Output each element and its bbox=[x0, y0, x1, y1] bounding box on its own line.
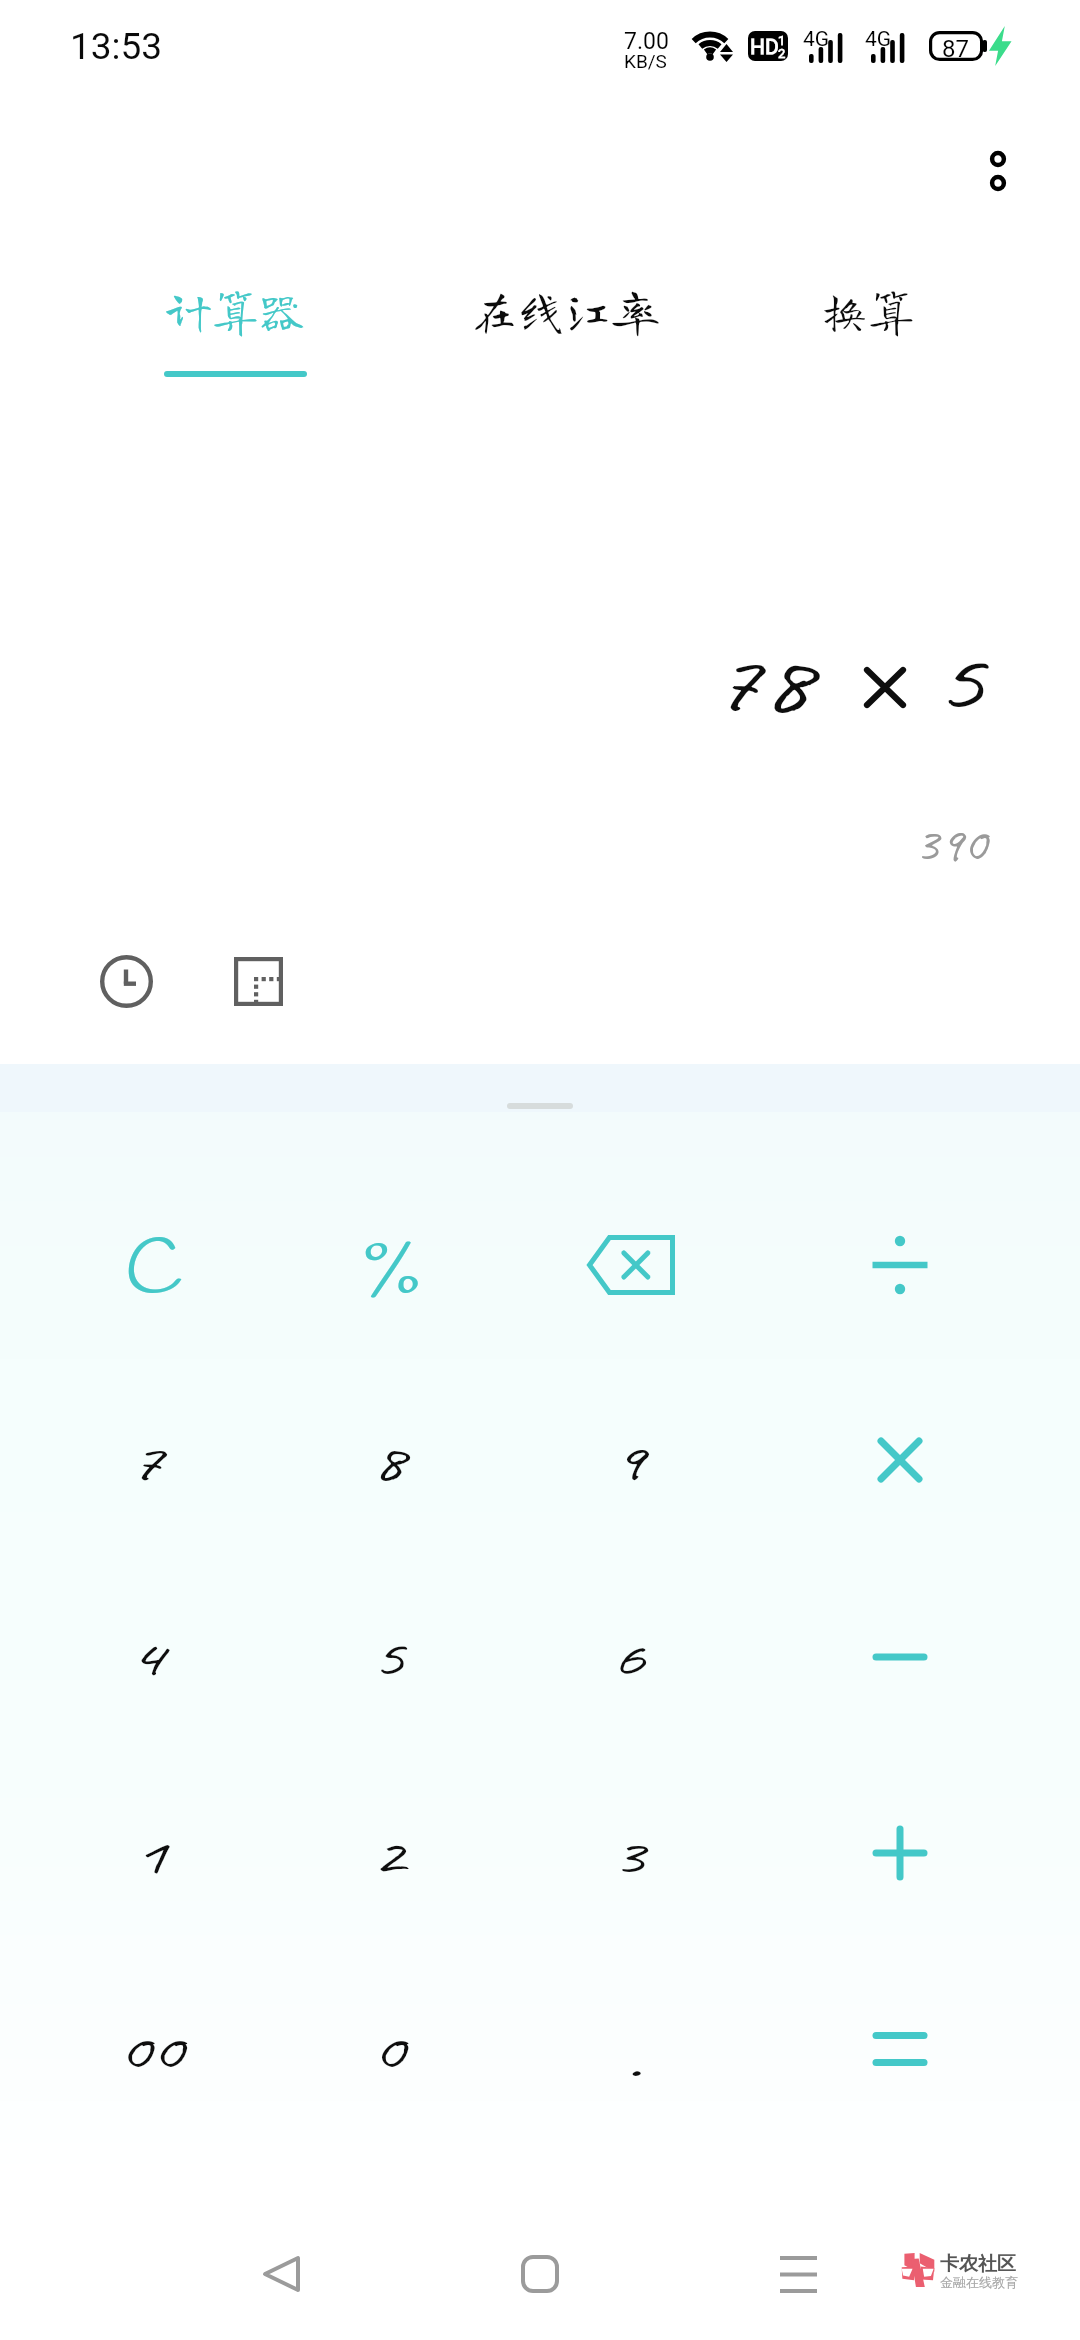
button[interactable]: 0 bbox=[270, 1953, 510, 2149]
staticText: 390 bbox=[914, 814, 987, 874]
button[interactable]: Keypad bbox=[214, 937, 302, 1025]
button[interactable]: C bbox=[32, 1167, 272, 1363]
staticText: 3 bbox=[612, 1825, 645, 1888]
button[interactable]: Divide bbox=[780, 1167, 1020, 1363]
staticText: 0 bbox=[372, 2020, 405, 2083]
staticText: 在线汇率 bbox=[471, 287, 659, 334]
button[interactable]: 8 bbox=[270, 1364, 510, 1560]
button[interactable]: 换算 bbox=[718, 287, 1018, 412]
staticText: 2 bbox=[372, 1825, 405, 1888]
button[interactable]: % bbox=[270, 1167, 510, 1363]
staticText: 00 bbox=[118, 2020, 183, 2083]
staticText: 7.00 bbox=[624, 28, 669, 55]
staticText: % bbox=[363, 1220, 421, 1324]
staticText: 1 bbox=[134, 1825, 167, 1888]
staticText: 换算 bbox=[821, 287, 915, 334]
other: Minus bbox=[876, 1653, 924, 1661]
staticText: 87 bbox=[942, 35, 969, 63]
button[interactable]: 5 bbox=[270, 1560, 510, 1756]
button[interactable]: Recents bbox=[754, 2230, 842, 2318]
button[interactable]: 3 bbox=[510, 1758, 750, 1954]
staticText: 金融在线教育 bbox=[940, 2274, 1018, 2290]
staticText: C bbox=[125, 1220, 183, 1324]
button[interactable]: 在线汇率 bbox=[415, 287, 715, 412]
staticText: 5 bbox=[934, 631, 984, 732]
staticText: 计算器 bbox=[165, 287, 306, 334]
button[interactable]: 7 bbox=[32, 1364, 272, 1560]
button[interactable]: Equals bbox=[780, 1951, 1020, 2147]
staticText: 13:53 bbox=[70, 25, 163, 68]
staticText: HD bbox=[750, 35, 779, 60]
staticText: 2 bbox=[778, 46, 786, 61]
staticText: 8 bbox=[372, 1431, 405, 1494]
staticText: 卡农社区 bbox=[940, 2252, 1016, 2276]
staticText: 6 bbox=[612, 1627, 645, 1690]
staticText: KB/S bbox=[624, 50, 667, 72]
button[interactable]: . bbox=[510, 1953, 750, 2149]
button[interactable]: Back bbox=[237, 2230, 325, 2318]
button[interactable]: History bbox=[82, 937, 170, 1025]
button[interactable]: 4 bbox=[32, 1560, 272, 1756]
staticText: . bbox=[627, 2030, 641, 2093]
staticText: 7 bbox=[127, 1431, 164, 1494]
staticText: 4G bbox=[803, 27, 830, 52]
button[interactable]: 9 bbox=[510, 1364, 750, 1560]
staticText: 9 bbox=[612, 1431, 645, 1494]
button[interactable]: Home bbox=[496, 2230, 584, 2318]
button[interactable]: 6 bbox=[510, 1560, 750, 1756]
button[interactable]: 00 bbox=[32, 1953, 272, 2149]
staticText: 4 bbox=[127, 1627, 164, 1690]
other: Equals bbox=[876, 2032, 924, 2066]
staticText: 78 bbox=[710, 633, 811, 734]
button[interactable]: Minus bbox=[780, 1559, 1020, 1755]
staticText: 1 bbox=[778, 33, 786, 48]
other: Multiply bbox=[879, 1439, 921, 1481]
other: Backspace bbox=[587, 1235, 675, 1295]
staticText: 5 bbox=[372, 1627, 405, 1690]
button[interactable]: 2 bbox=[270, 1758, 510, 1954]
button[interactable]: Backspace bbox=[510, 1167, 750, 1363]
button[interactable]: More options bbox=[954, 127, 1042, 215]
staticText: 4G bbox=[865, 27, 892, 52]
other: Divide bbox=[872, 1238, 928, 1292]
button[interactable]: 1 bbox=[32, 1758, 272, 1954]
button[interactable]: Plus bbox=[780, 1755, 1020, 1951]
button[interactable]: 计算器 bbox=[85, 287, 385, 412]
button[interactable]: Multiply bbox=[780, 1362, 1020, 1558]
other: Plus bbox=[876, 1829, 924, 1877]
